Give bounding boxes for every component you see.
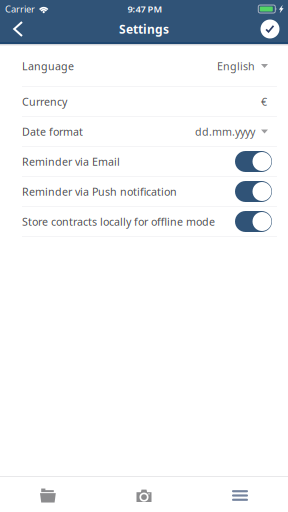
staticText: dd.mm.yyyy [195, 124, 255, 139]
staticText: Reminder via Email [22, 154, 120, 169]
button[interactable]: Reminder via Email [0, 147, 288, 176]
staticText: Currency [22, 94, 67, 109]
button[interactable]: Reminder via Push notification [0, 177, 288, 206]
staticText: Store contracts locally for offline mode [22, 214, 215, 229]
button[interactable]: Language [0, 46, 288, 86]
button[interactable]: Back [0, 16, 36, 42]
staticText: Settings [119, 21, 169, 37]
button[interactable]: Camera [96, 477, 192, 512]
staticText: Reminder via Push notification [22, 184, 177, 199]
staticText: Carrier [5, 3, 35, 15]
button[interactable]: Menu [192, 477, 288, 512]
button[interactable]: Save [252, 16, 288, 42]
staticText: 9:47 PM [127, 3, 162, 15]
button[interactable]: Date format [0, 117, 288, 146]
button[interactable]: Currency [0, 87, 288, 116]
staticText: € [261, 94, 267, 109]
staticText: Date format [22, 124, 83, 139]
button[interactable]: Store contracts locally for offline mode [0, 207, 288, 236]
button[interactable]: Documents [0, 477, 96, 512]
staticText: English [217, 59, 255, 73]
staticText: Language [22, 59, 74, 73]
